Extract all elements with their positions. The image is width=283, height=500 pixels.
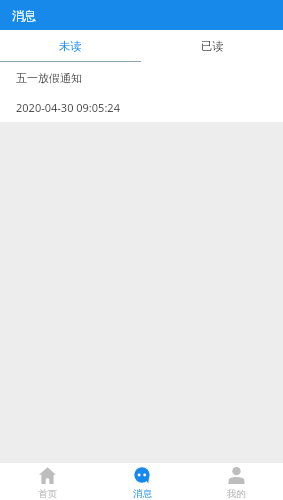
staticText: 消息 xyxy=(133,488,152,500)
button[interactable]: 已读 xyxy=(141,30,283,61)
other: 我的 xyxy=(228,467,245,484)
button[interactable]: 我的 xyxy=(189,463,283,500)
staticText: 2020-04-30 09:05:24 xyxy=(16,100,120,115)
staticText: 已读 xyxy=(201,39,224,53)
button[interactable]: 五一放假通知 xyxy=(0,62,283,122)
other: 首页 xyxy=(39,467,56,484)
staticText: 消息 xyxy=(12,8,36,23)
staticText: 我的 xyxy=(227,488,246,500)
button[interactable]: 消息 xyxy=(95,463,189,500)
staticText: 五一放假通知 xyxy=(16,71,82,85)
staticText: 未读 xyxy=(59,39,82,53)
button[interactable]: 未读 xyxy=(0,30,141,61)
other: 消息 xyxy=(134,467,151,484)
button[interactable]: 首页 xyxy=(0,463,95,500)
staticText: 首页 xyxy=(38,488,57,500)
